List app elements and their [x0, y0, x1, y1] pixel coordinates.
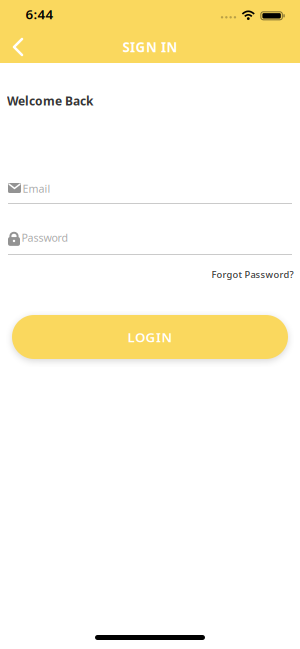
- button[interactable]: LOGIN: [12, 315, 288, 359]
- button[interactable]: Email: [8, 183, 292, 205]
- staticText: Forgot Password?: [211, 268, 293, 281]
- button[interactable]: Back: [4, 31, 32, 63]
- staticText: Password: [22, 230, 69, 245]
- button[interactable]: Password: [8, 230, 292, 255]
- staticText: 6:44: [25, 5, 53, 23]
- staticText: Email: [22, 181, 50, 196]
- staticText: LOGIN: [127, 328, 172, 346]
- button[interactable]: Forgot Password?: [207, 264, 297, 285]
- staticText: Welcome Back: [7, 93, 93, 109]
- staticText: SIGN IN: [122, 38, 177, 56]
